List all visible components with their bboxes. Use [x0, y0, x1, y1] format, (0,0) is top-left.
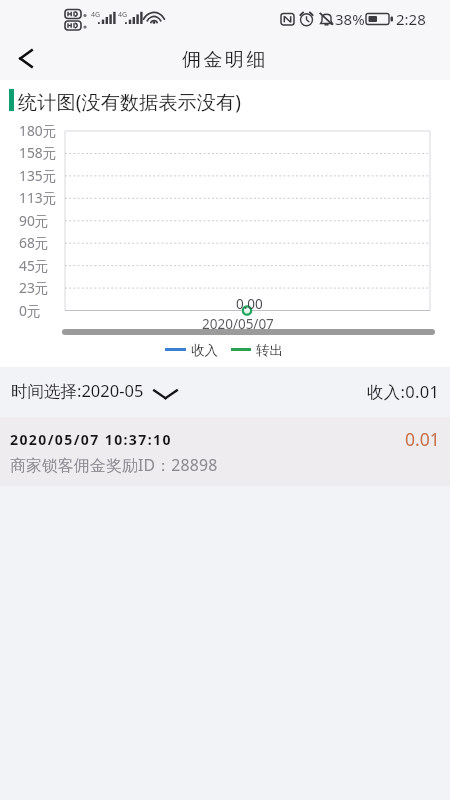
staticText: 2020/05/07	[202, 315, 274, 333]
staticText: 佣金明细	[0, 48, 450, 72]
staticText: 23元	[19, 278, 49, 296]
staticText: 4G	[91, 10, 101, 20]
button[interactable]: Back	[6, 38, 46, 78]
staticText: 4G	[118, 10, 128, 20]
staticText: 收入:0.01	[367, 380, 440, 403]
staticText: 收入	[191, 342, 218, 359]
staticText: 0元	[19, 301, 41, 319]
button[interactable]: 时间选择:2020-05	[11, 378, 178, 402]
staticText: 45元	[19, 256, 49, 274]
staticText: 0.00	[236, 295, 263, 313]
staticText: 转出	[256, 342, 283, 359]
staticText: 158元	[19, 143, 57, 161]
staticText: 113元	[19, 188, 57, 206]
staticText: 135元	[19, 166, 57, 184]
staticText: 商家锁客佣金奖励ID：28898	[10, 454, 218, 476]
staticText: 2020/05/07 10:37:10	[10, 430, 172, 449]
staticText: 38%	[335, 9, 365, 29]
staticText: 68元	[19, 233, 49, 251]
staticText: 统计图(没有数据表示没有)	[18, 89, 241, 115]
button[interactable]: 2020/05/07 10:37:10	[0, 417, 450, 486]
staticText: 2:28	[396, 9, 426, 29]
staticText: 90元	[19, 211, 49, 229]
staticText: 0.01	[405, 427, 440, 451]
staticText: 时间选择:2020-05	[11, 379, 144, 402]
staticText: 180元	[19, 121, 57, 139]
